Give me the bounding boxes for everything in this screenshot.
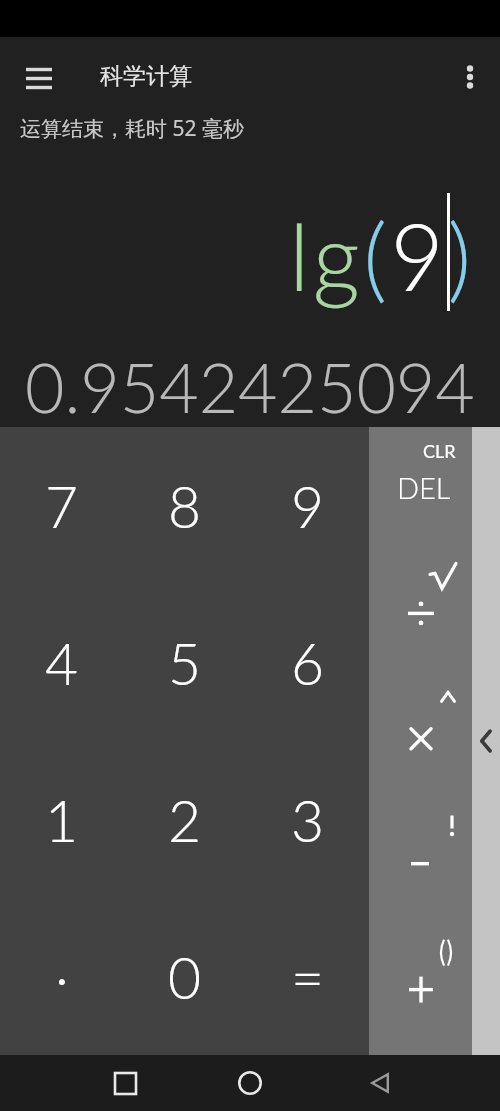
staticText: · xyxy=(55,943,69,1011)
button[interactable]: CLR xyxy=(369,427,472,552)
button[interactable]: Back xyxy=(355,1055,405,1111)
button[interactable]: · xyxy=(0,898,123,1055)
button[interactable]: 3 xyxy=(246,741,369,898)
staticText: 3 xyxy=(291,786,325,854)
button[interactable]: 0 xyxy=(123,898,246,1055)
staticText: 科学计算 xyxy=(100,62,192,91)
staticText: 5 xyxy=(168,629,202,697)
button[interactable]: Divide and Square root xyxy=(369,552,472,677)
staticText: 9 xyxy=(291,472,325,540)
staticText: 7 xyxy=(45,472,79,540)
button[interactable]: 2 xyxy=(123,741,246,898)
staticText: CLR xyxy=(423,440,456,462)
staticText: 运算结束，耗时 52 毫秒 xyxy=(20,114,244,143)
button[interactable]: Home xyxy=(220,1055,280,1111)
button[interactable]: 1 xyxy=(0,741,123,898)
staticText: DEL xyxy=(397,470,451,505)
button[interactable]: = xyxy=(246,898,369,1055)
button[interactable]: 4 xyxy=(0,584,123,741)
button[interactable]: Navigation menu xyxy=(14,53,64,101)
staticText: 4 xyxy=(45,629,79,697)
button[interactable]: 7 xyxy=(0,427,123,584)
button[interactable]: Subtract and Factorial xyxy=(369,803,472,929)
staticText: = xyxy=(291,943,325,1011)
button[interactable]: 8 xyxy=(123,427,246,584)
button[interactable]: Open history panel xyxy=(472,427,500,1055)
button[interactable]: 5 xyxy=(123,584,246,741)
staticText: 6 xyxy=(291,629,325,697)
button[interactable]: Recent apps xyxy=(95,1055,155,1111)
button[interactable]: 6 xyxy=(246,584,369,741)
staticText: 0.9542425094 xyxy=(25,346,475,428)
button[interactable]: More options xyxy=(449,53,491,101)
staticText: 8 xyxy=(168,472,202,540)
button[interactable]: Multiply and Power xyxy=(369,677,472,803)
staticText: 2 xyxy=(168,786,202,854)
staticText: 1 xyxy=(45,786,79,854)
staticText: lg(9) xyxy=(289,200,475,310)
button[interactable]: Add and Parentheses xyxy=(369,929,472,1055)
button[interactable]: 9 xyxy=(246,427,369,584)
staticText: 0 xyxy=(168,943,202,1011)
